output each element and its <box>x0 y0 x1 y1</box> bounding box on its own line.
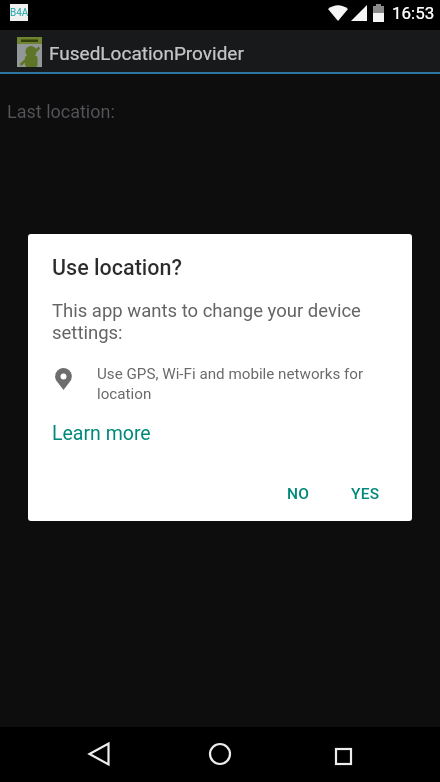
staticText: This app wants to change your device set… <box>52 300 361 343</box>
button[interactable]: NO <box>275 475 322 513</box>
button[interactable]: Learn more <box>44 414 159 453</box>
staticText: 16:53 <box>392 3 435 23</box>
staticText: B4A <box>10 7 28 19</box>
staticText: Use location? <box>52 255 182 280</box>
button[interactable] <box>323 736 363 776</box>
staticText: Last location: <box>7 101 115 122</box>
button[interactable] <box>200 734 240 774</box>
staticText: FusedLocationProvider <box>49 42 244 64</box>
button[interactable] <box>79 734 119 774</box>
staticText: Use GPS, Wi-Fi and mobile networks for l… <box>97 365 364 403</box>
staticText: YES <box>351 485 380 503</box>
staticText: NO <box>287 485 310 503</box>
button[interactable]: YES <box>339 475 392 513</box>
staticText: Learn more <box>52 422 151 445</box>
